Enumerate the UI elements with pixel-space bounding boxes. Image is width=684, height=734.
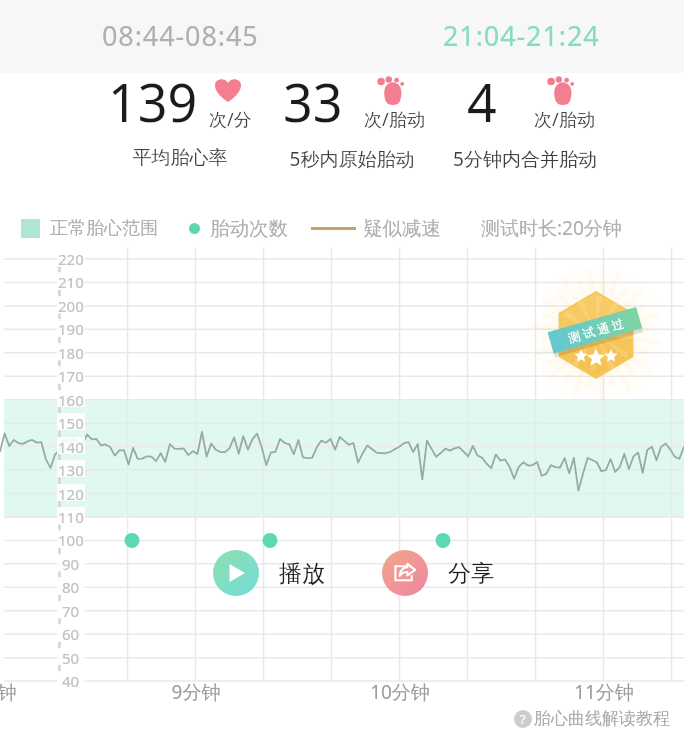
- staticText: 70: [62, 601, 80, 618]
- staticText: 120: [58, 484, 84, 501]
- staticText: 次/胎动: [534, 107, 595, 132]
- staticText: 次/胎动: [364, 107, 425, 132]
- staticText: 130: [58, 460, 84, 477]
- staticText: 100: [58, 530, 84, 547]
- staticText: 8分钟: [0, 679, 52, 705]
- staticText: 110: [58, 507, 84, 524]
- staticText: 测试时长:20分钟: [481, 215, 622, 241]
- staticText: 平均胎心率: [90, 146, 270, 170]
- staticText: 5分钟内合并胎动: [435, 146, 615, 172]
- staticText: 80: [62, 577, 80, 594]
- staticText: 210: [58, 272, 84, 289]
- staticText: 5秒内原始胎动: [262, 146, 442, 172]
- button[interactable]: 分享: [382, 550, 494, 596]
- staticText: 33: [283, 66, 343, 137]
- staticText: 08:44-08:45: [102, 17, 259, 54]
- staticText: 10分钟: [340, 679, 460, 705]
- staticText: 140: [58, 437, 84, 454]
- staticText: 9分钟: [136, 679, 256, 705]
- staticText: 220: [58, 249, 84, 266]
- staticText: 190: [58, 319, 84, 336]
- staticText: 170: [58, 366, 84, 383]
- staticText: 40: [62, 671, 80, 688]
- button[interactable]: 播放: [213, 550, 325, 596]
- staticText: 分享: [448, 559, 494, 588]
- staticText: 160: [58, 390, 84, 407]
- staticText: 4: [467, 66, 497, 137]
- staticText: 200: [58, 296, 84, 313]
- staticText: 139: [108, 66, 198, 137]
- staticText: 50: [62, 648, 80, 665]
- staticText: 90: [62, 554, 80, 571]
- staticText: 60: [62, 624, 80, 641]
- staticText: 播放: [279, 559, 325, 588]
- staticText: 测试通过: [565, 315, 627, 346]
- staticText: 150: [58, 413, 84, 430]
- staticText: 11分钟: [544, 679, 664, 705]
- staticText: 胎动次数: [210, 216, 288, 241]
- staticText: 次/分: [209, 107, 252, 132]
- staticText: 正常胎心范围: [50, 217, 158, 240]
- staticText: 疑似减速: [363, 216, 441, 241]
- staticText: 180: [58, 343, 84, 360]
- button[interactable]: ?: [514, 708, 670, 729]
- staticText: ?: [520, 710, 526, 728]
- staticText: 胎心曲线解读教程: [534, 708, 670, 729]
- staticText: 21:04-21:24: [443, 17, 600, 54]
